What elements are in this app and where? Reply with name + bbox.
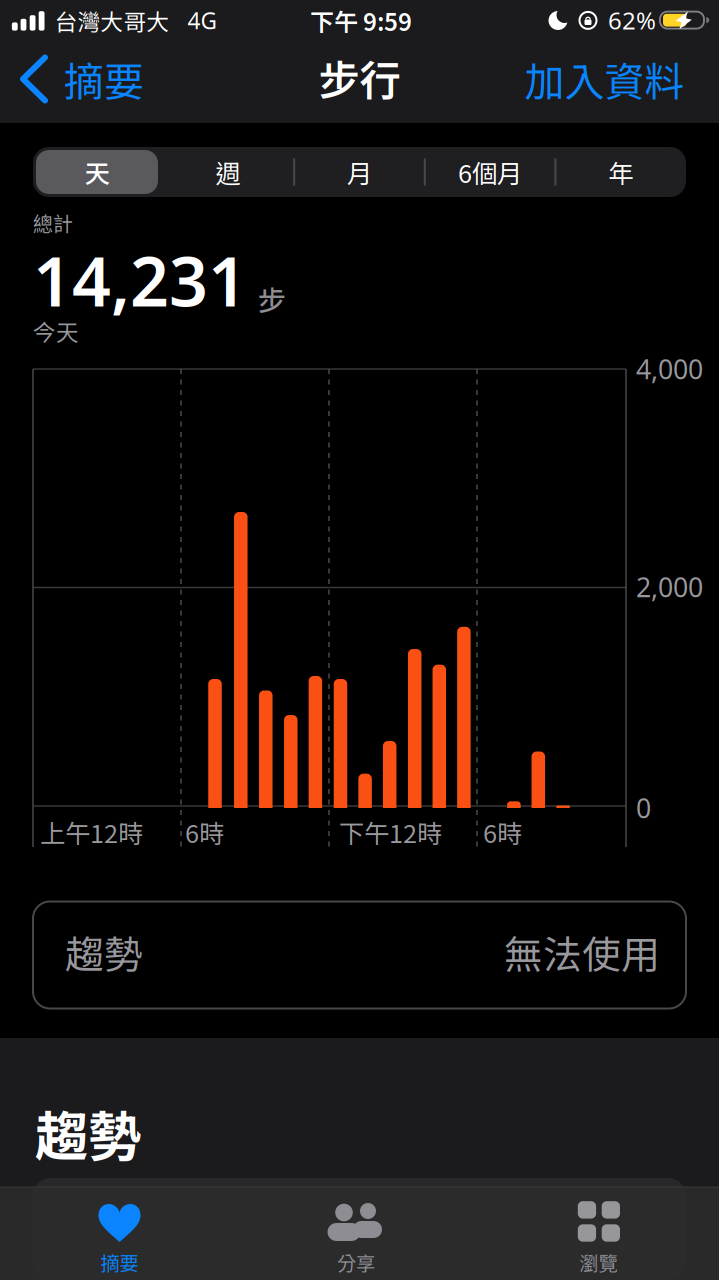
staticText: 無法使用 bbox=[504, 924, 660, 980]
staticText: 分享 bbox=[337, 1248, 375, 1276]
staticText: 4,000 bbox=[636, 351, 703, 387]
staticText: 年 bbox=[608, 154, 633, 190]
staticText: 加入資料 bbox=[524, 50, 684, 108]
staticText: 台灣大哥大 bbox=[54, 4, 169, 37]
staticText: 14,231 bbox=[33, 235, 247, 325]
staticText: 今天 bbox=[33, 315, 79, 347]
button[interactable]: 返回摘要 bbox=[18, 52, 178, 106]
staticText: 趨勢 bbox=[35, 1094, 141, 1172]
staticText: 月 bbox=[347, 154, 372, 190]
staticText: 6時 bbox=[185, 814, 224, 850]
staticText: 摘要 bbox=[100, 1248, 138, 1276]
staticText: 步行 bbox=[318, 48, 400, 107]
staticText: 摘要 bbox=[64, 50, 144, 108]
button[interactable]: 月 bbox=[297, 149, 421, 195]
staticText: 下午12時 bbox=[339, 814, 442, 850]
button[interactable]: 年 bbox=[559, 149, 683, 195]
staticText: 4G bbox=[187, 5, 217, 35]
staticText: 2,000 bbox=[636, 569, 703, 605]
button[interactable]: 6個月 bbox=[428, 149, 552, 195]
button[interactable]: 加入資料 bbox=[524, 44, 684, 114]
button[interactable]: 摘要 bbox=[29, 1186, 209, 1280]
staticText: 週 bbox=[215, 154, 240, 190]
staticText: 6個月 bbox=[458, 154, 522, 190]
button[interactable]: 週 bbox=[166, 149, 290, 195]
staticText: 天 bbox=[84, 154, 109, 190]
staticText: 趨勢 bbox=[65, 924, 143, 980]
staticText: 0 bbox=[636, 790, 651, 826]
button[interactable]: 瀏覽 bbox=[508, 1186, 688, 1280]
staticText: 總計 bbox=[33, 208, 73, 237]
staticText: 62% bbox=[608, 4, 656, 36]
staticText: 上午12時 bbox=[40, 814, 143, 850]
staticText: 步 bbox=[258, 279, 286, 319]
staticText: 瀏覽 bbox=[579, 1248, 617, 1276]
button[interactable]: 天 bbox=[36, 150, 158, 194]
button[interactable]: 分享 bbox=[266, 1186, 446, 1280]
staticText: 下午 9:59 bbox=[310, 3, 412, 38]
staticText: 6時 bbox=[483, 814, 522, 850]
